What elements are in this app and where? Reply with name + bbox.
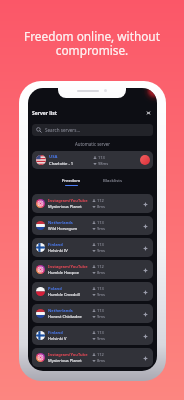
staticText: Honest Chickadee xyxy=(48,314,82,319)
staticText: 9ms xyxy=(97,292,106,297)
button[interactable]: Add to favourites xyxy=(140,331,150,341)
button[interactable]: Blacklists xyxy=(98,177,128,186)
button[interactable]: Finland xyxy=(32,326,153,345)
staticText: 9ms xyxy=(97,314,106,319)
staticText: Automatic server xyxy=(28,141,157,147)
staticText: 113 xyxy=(97,242,104,247)
button[interactable]: Finland xyxy=(32,238,153,257)
staticText: Mysterious Planet xyxy=(48,204,82,209)
staticText: 9ms xyxy=(97,248,106,253)
staticText: 9ms xyxy=(97,226,106,231)
staticText: Freedom xyxy=(62,177,81,183)
staticText: Mysterious Planet xyxy=(48,358,82,363)
staticText: 98ms xyxy=(98,161,109,166)
staticText: Instagram/YouTube xyxy=(48,198,88,203)
staticText: 112 xyxy=(97,198,104,203)
button[interactable]: Add to favourites xyxy=(140,287,150,297)
staticText: Humble Hoopoe xyxy=(48,270,79,275)
staticText: Charlotte - 1 xyxy=(49,161,74,167)
staticText: Blacklists xyxy=(103,177,123,183)
staticText: 8ms xyxy=(97,358,106,363)
staticText: Netherlands xyxy=(48,308,73,313)
button[interactable]: Add to favourites xyxy=(140,199,150,209)
button[interactable]: Freedom xyxy=(57,177,86,186)
staticText: Netherlands xyxy=(48,220,73,225)
staticText: Poland xyxy=(48,286,62,291)
staticText: Finland xyxy=(48,242,63,247)
button[interactable]: Add to favourites xyxy=(140,221,150,231)
button[interactable]: Close xyxy=(144,109,153,117)
staticText: Search servers... xyxy=(45,127,81,133)
staticText: 8ms xyxy=(97,270,106,275)
staticText: 113 xyxy=(97,308,104,313)
button[interactable]: USA xyxy=(32,151,153,169)
staticText: 113 xyxy=(97,220,104,225)
staticText: Server list xyxy=(32,110,58,117)
staticText: Helsinki V xyxy=(48,336,67,341)
button[interactable]: Instagram/YouTube xyxy=(32,194,153,213)
button[interactable]: Netherlands xyxy=(32,304,153,323)
staticText: Wild Horsegum xyxy=(48,226,78,231)
button[interactable]: Add to favourites xyxy=(140,309,150,319)
button[interactable]: Add to favourites xyxy=(140,243,150,253)
button[interactable]: Instagram/YouTube xyxy=(32,348,153,367)
staticText: 112 xyxy=(97,352,104,357)
button[interactable]: Search servers... xyxy=(32,124,153,136)
staticText: 113 xyxy=(97,330,104,335)
button[interactable]: Add to favourites xyxy=(140,265,150,275)
staticText: Helsinki IV xyxy=(48,248,68,253)
button[interactable]: Poland xyxy=(32,282,153,301)
staticText: Freedom online, without compromise. xyxy=(0,28,184,59)
staticText: USA xyxy=(49,154,58,160)
staticText: 113 xyxy=(97,286,104,291)
button[interactable]: Netherlands xyxy=(32,216,153,235)
staticText: 112 xyxy=(97,264,104,269)
staticText: 113 xyxy=(98,155,105,160)
button[interactable]: Instagram/YouTube xyxy=(32,260,153,279)
staticText: Finland xyxy=(48,330,63,335)
staticText: Instagram/YouTube xyxy=(48,352,88,357)
button[interactable]: Connect xyxy=(140,155,150,165)
button[interactable]: Add to favourites xyxy=(140,353,150,363)
staticText: Instagram/YouTube xyxy=(48,264,88,269)
staticText: 8ms xyxy=(97,204,106,209)
staticText: Humble Crossbill xyxy=(48,292,80,297)
staticText: 9ms xyxy=(97,336,106,341)
